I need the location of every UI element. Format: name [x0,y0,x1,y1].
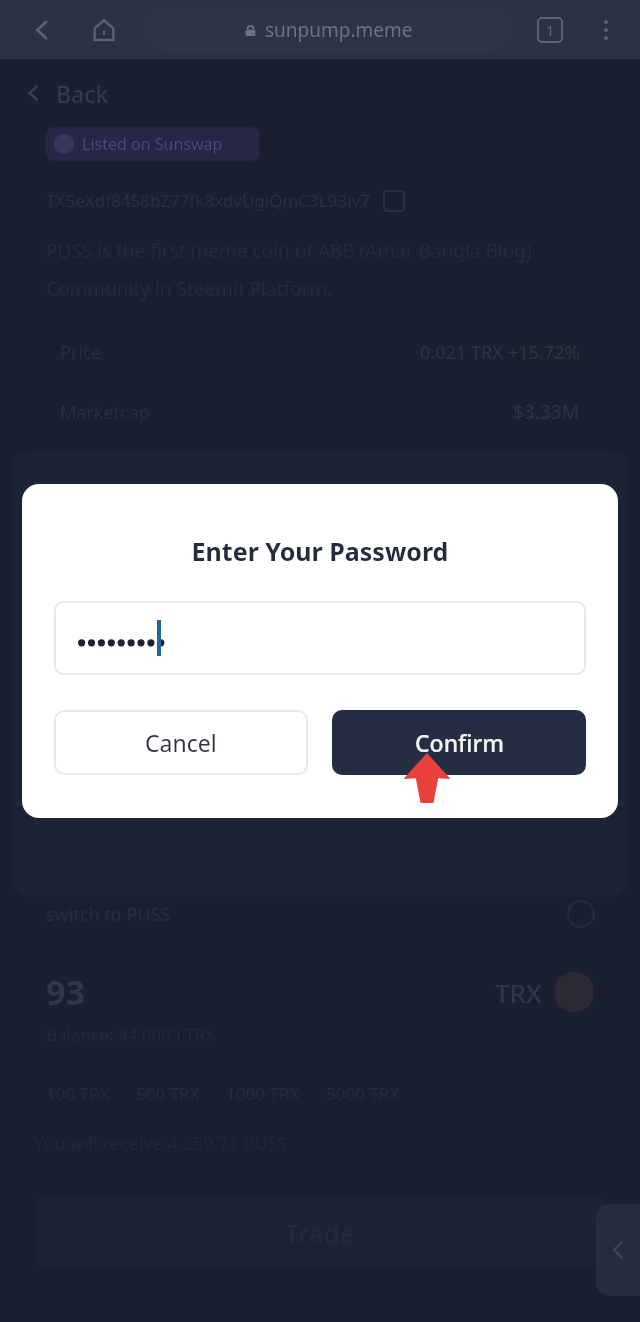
button[interactable]: More options [582,6,630,54]
button[interactable]: Swipe back [596,1204,640,1296]
staticText: sunpump.meme [265,17,413,43]
staticText: Cancel [145,727,217,758]
staticText: Enter Your Password [22,534,618,568]
staticText: $3.33M [513,399,580,425]
button[interactable] [54,601,586,675]
staticText: 100 TRX [46,1082,110,1105]
staticText: PUSS is the first meme coin of ABB (Amar… [46,238,532,264]
button[interactable]: Cancel [54,710,308,775]
staticText: Price [60,340,102,365]
staticText: Please approve in your wallet to confirm [150,796,490,821]
staticText: switch to PUSS [46,902,171,927]
staticText: 500 TRX [136,1082,200,1105]
button[interactable]: Confirm [332,710,586,775]
staticText: 93 [46,969,85,1015]
staticText: 1 [546,21,555,40]
staticText: 0.021 TRX [420,340,508,365]
button[interactable]: Back [16,4,68,56]
staticText: Listed on Sunswap [82,133,223,155]
staticText: Marketcap [60,400,150,425]
staticText: TRX [495,975,542,1010]
button[interactable]: sunpump.meme [144,8,512,52]
staticText: TX5eXdf8458bZ77fk8xdvUgiQmC3L93iv7 [46,189,370,212]
staticText: Confirm [415,727,504,758]
button[interactable]: Tabs [526,6,574,54]
staticText: Back [56,78,109,109]
staticText: 1000 TRX [226,1082,300,1105]
button[interactable]: Home [78,4,130,56]
staticText: 5000 TRX [326,1082,400,1105]
staticText: +15.72% [508,340,580,365]
staticText: Community in Steemit Platform. [46,276,333,302]
